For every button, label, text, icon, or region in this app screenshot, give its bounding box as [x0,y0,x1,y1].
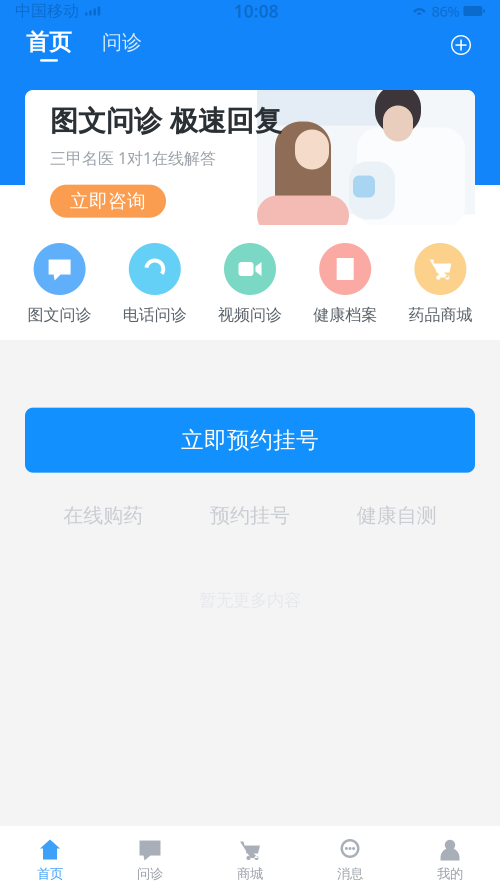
staticText: 首页 [37,865,63,882]
button[interactable]: 商城 [200,825,300,889]
staticText: 视频问诊 [218,305,282,325]
button[interactable]: 在线购药 [30,505,177,527]
staticText: 健康自测 [357,503,437,528]
staticText: 消息 [337,865,363,882]
staticText: 三甲名医 1对1在线解答 [50,147,216,169]
button[interactable]: 立即咨询 [50,185,166,218]
staticText: 86% [431,1,459,21]
button[interactable]: 视频问诊 [202,243,298,325]
staticText: 问诊 [137,865,163,882]
staticText: 健康档案 [313,305,377,325]
button[interactable]: 问诊 [102,30,142,60]
button[interactable]: 图文问诊 [12,243,107,325]
button[interactable]: 健康自测 [323,505,470,527]
staticText: 首页 [26,28,72,56]
button[interactable]: 首页 [0,825,100,889]
staticText: 问诊 [102,30,142,55]
button[interactable]: 首页 [26,28,72,62]
button[interactable]: 预约挂号 [177,505,323,527]
staticText: 在线购药 [63,503,143,528]
staticText: 商城 [237,865,263,882]
staticText: 预约挂号 [210,503,290,528]
button[interactable]: 药品商城 [393,243,488,325]
button[interactable]: 问诊 [100,825,200,889]
button[interactable]: 电话问诊 [107,243,202,325]
staticText: 中国移动 [15,1,79,21]
button[interactable]: 健康档案 [298,243,393,325]
button[interactable]: 我的 [400,825,500,889]
staticText: 图文问诊 [28,305,92,325]
staticText: 暂无更多内容 [199,590,301,611]
staticText: 图文问诊 极速回复 [50,104,282,138]
staticText: 电话问诊 [123,305,187,325]
button[interactable]: 添加 [448,32,474,58]
staticText: 我的 [437,865,463,882]
button[interactable]: 消息 [300,825,400,889]
staticText: 立即咨询 [70,190,146,213]
staticText: 10:08 [234,0,279,22]
staticText: 立即预约挂号 [181,426,319,454]
button[interactable]: 立即预约挂号 [25,408,475,473]
staticText: 药品商城 [408,305,472,325]
